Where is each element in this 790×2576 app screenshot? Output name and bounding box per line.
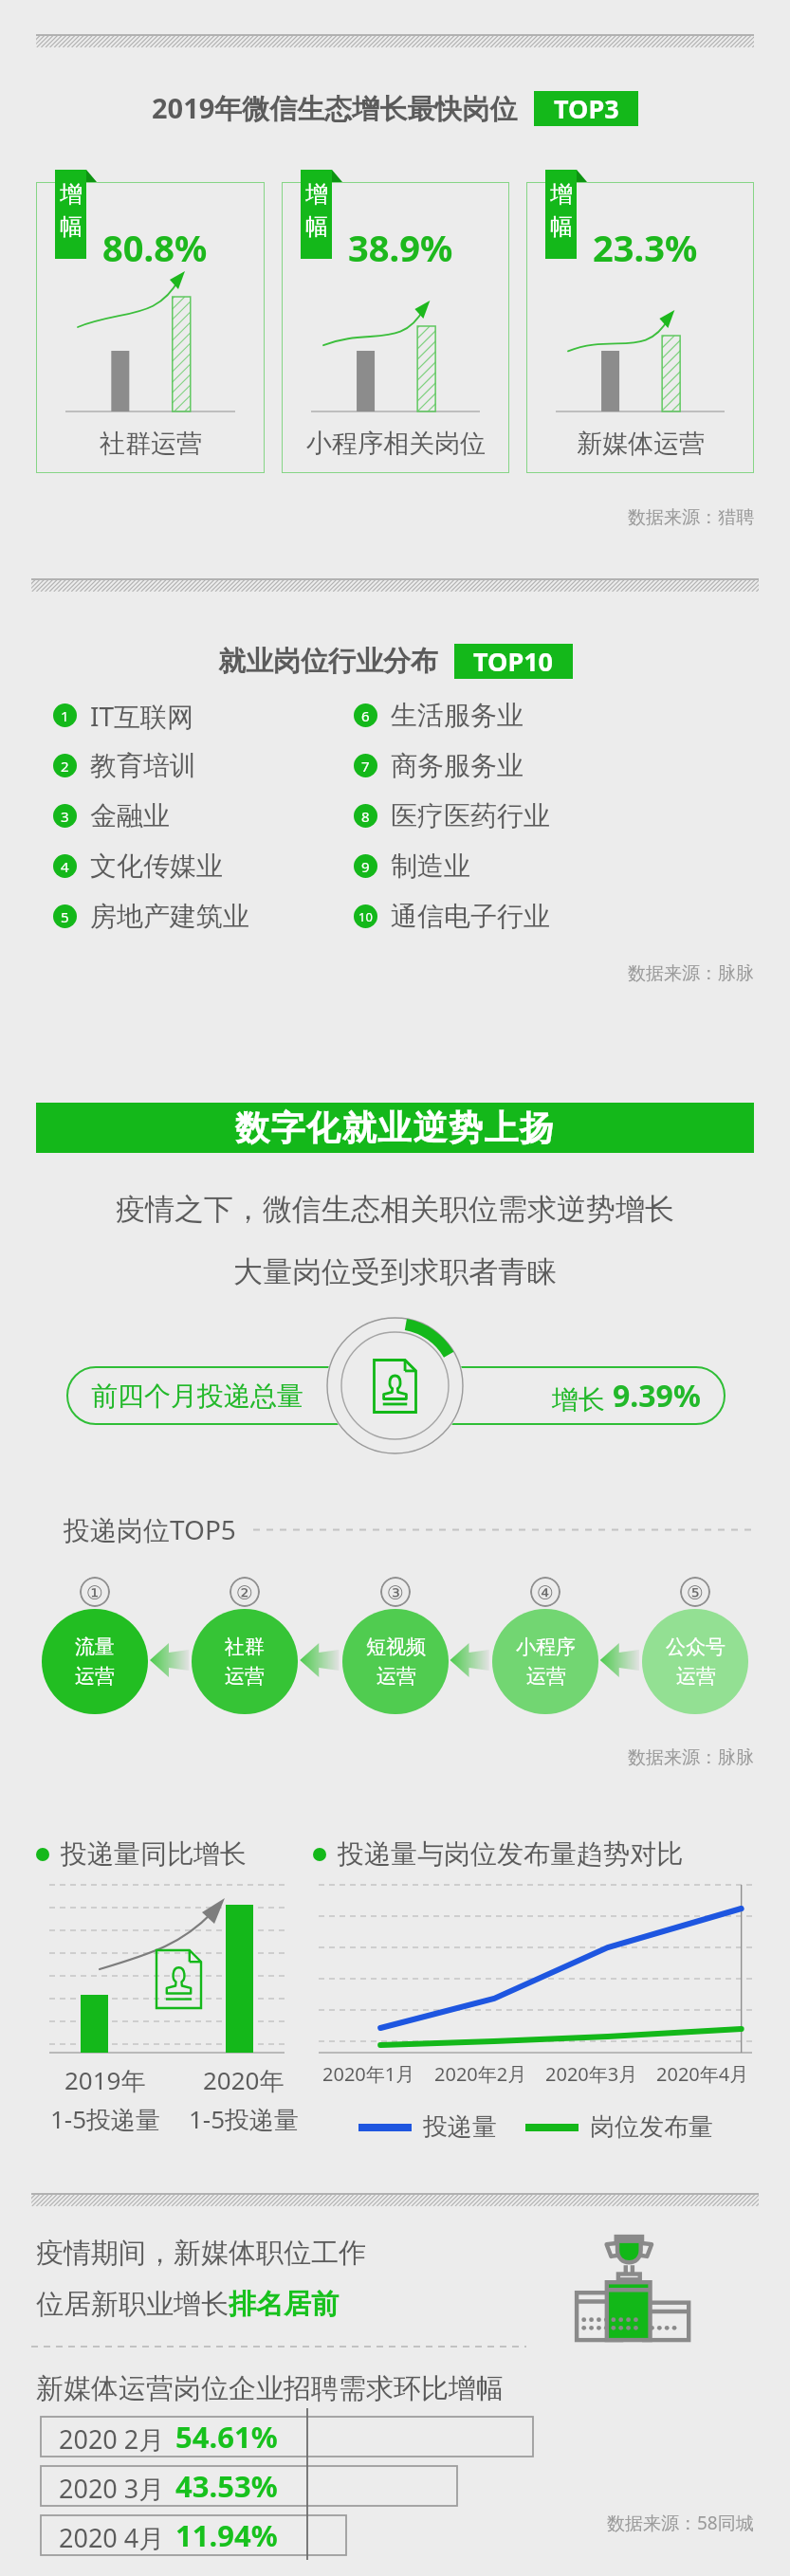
staticText: 通信电子行业	[391, 900, 550, 933]
staticText: 小程序	[516, 1635, 576, 1659]
staticText: 2019年	[64, 2063, 146, 2097]
button[interactable]: 流量	[42, 1609, 148, 1714]
staticText: 增	[60, 180, 83, 209]
button[interactable]: TOP3	[534, 91, 638, 126]
staticText: 商务服务业	[391, 749, 524, 782]
staticText: 9.39%	[613, 1375, 701, 1416]
staticText: 幅	[550, 212, 573, 241]
staticText: 位居新职业增长	[36, 2287, 229, 2322]
staticText: 2019年微信生态增长最快岗位	[152, 89, 518, 127]
button[interactable]: 3	[53, 791, 170, 841]
staticText: 8	[361, 807, 370, 826]
staticText: 38.9%	[348, 223, 453, 272]
staticText: 3	[61, 807, 69, 826]
staticText: 2020年3月	[545, 2061, 638, 2087]
staticText: ①	[86, 1581, 103, 1603]
staticText: 1-5投递量	[50, 2102, 161, 2136]
staticText: 金融业	[90, 799, 170, 832]
staticText: 流量	[75, 1635, 115, 1659]
staticText: 社群运营	[100, 428, 202, 460]
staticText: ②	[236, 1581, 253, 1603]
staticText: 54.61%	[175, 2417, 278, 2457]
staticText: 小程序相关岗位	[306, 428, 486, 460]
staticText: 2020 4月	[59, 2520, 165, 2555]
staticText: 社群	[225, 1635, 265, 1659]
staticText: 运营	[225, 1664, 265, 1689]
staticText: 投递量与岗位发布量趋势对比	[338, 1837, 683, 1871]
staticText: 2020年	[203, 2063, 285, 2097]
staticText: 新媒体运营	[577, 428, 705, 460]
button[interactable]: 公众号	[642, 1609, 748, 1714]
staticText: 数据来源：58同城	[607, 2511, 754, 2535]
staticText: 2020 3月	[59, 2471, 165, 2506]
staticText: 新媒体运营岗位企业招聘需求环比增幅	[36, 2371, 504, 2406]
button[interactable]: 10	[354, 891, 550, 941]
staticText: 幅	[305, 212, 328, 241]
staticText: 数字化就业逆势上扬	[235, 1106, 556, 1149]
staticText: 数据来源：脉脉	[0, 1746, 754, 1769]
staticText: ⑤	[687, 1581, 704, 1603]
staticText: 生活服务业	[391, 699, 524, 732]
staticText: 数据来源：脉脉	[0, 962, 754, 985]
staticText: ③	[387, 1581, 404, 1603]
staticText: 23.3%	[593, 223, 698, 272]
staticText: 10	[358, 908, 373, 925]
button[interactable]	[282, 182, 509, 473]
button[interactable]: 小程序	[492, 1609, 598, 1714]
staticText: 幅	[60, 212, 83, 241]
button[interactable]: 7	[354, 740, 524, 791]
staticText: IT互联网	[90, 698, 194, 734]
staticText: 投递岗位TOP5	[64, 1511, 236, 1547]
button[interactable]: 5	[53, 891, 249, 941]
staticText: 80.8%	[102, 223, 208, 272]
other: Ranking trophy	[572, 2233, 692, 2343]
staticText: 增长	[552, 1380, 613, 1416]
staticText: ④	[537, 1581, 554, 1603]
staticText: 运营	[75, 1664, 115, 1689]
staticText: 短视频	[366, 1635, 426, 1659]
staticText: 教育培训	[90, 749, 196, 782]
staticText: 投递量同比增长	[61, 1837, 247, 1871]
staticText: 9	[361, 857, 370, 876]
staticText: 5	[61, 907, 69, 926]
staticText: 运营	[377, 1664, 416, 1689]
staticText: 2020年2月	[434, 2061, 527, 2087]
staticText: 4	[61, 857, 69, 876]
staticText: 公众号	[666, 1635, 726, 1659]
staticText: 11.94%	[175, 2515, 278, 2555]
staticText: 排名居前	[229, 2287, 339, 2322]
staticText: 增	[550, 180, 573, 209]
staticText: 医疗医药行业	[391, 799, 550, 832]
staticText: 岗位发布量	[590, 2111, 713, 2143]
staticText: 2020年4月	[656, 2061, 749, 2087]
button[interactable]: 6	[354, 690, 524, 740]
staticText: 2020 2月	[59, 2421, 165, 2457]
button[interactable]: 4	[53, 841, 223, 891]
staticText: TOP10	[473, 644, 554, 679]
staticText: 前四个月投递总量	[91, 1379, 303, 1413]
button[interactable]: 8	[354, 791, 550, 841]
button[interactable]: TOP10	[454, 644, 573, 679]
staticText: 增	[305, 180, 328, 209]
button[interactable]: 数字化就业逆势上扬	[36, 1103, 754, 1153]
button[interactable]: 9	[354, 841, 470, 891]
staticText: 数据来源：猎聘	[0, 506, 754, 529]
button[interactable]	[526, 182, 754, 473]
button[interactable]: 1	[53, 690, 194, 740]
button[interactable]: 前四个月投递总量	[66, 1366, 395, 1425]
staticText: 大量岗位受到求职者青睐	[0, 1253, 790, 1290]
staticText: 就业岗位行业分布	[218, 644, 438, 679]
staticText: 制造业	[391, 850, 470, 883]
staticText: TOP3	[554, 91, 619, 126]
button[interactable]: 社群	[192, 1609, 298, 1714]
other: Total deliveries	[325, 1316, 465, 1455]
staticText: 运营	[676, 1664, 716, 1689]
button[interactable]: 短视频	[342, 1609, 449, 1714]
button[interactable]: 2	[53, 740, 196, 791]
staticText: 2	[61, 757, 69, 776]
button[interactable]: 增长	[395, 1366, 726, 1425]
button[interactable]	[36, 182, 265, 473]
staticText: 1-5投递量	[189, 2102, 300, 2136]
staticText: 运营	[526, 1664, 566, 1689]
staticText: 2020年1月	[322, 2061, 415, 2087]
